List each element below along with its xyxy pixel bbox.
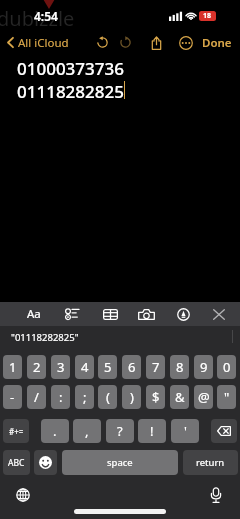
button[interactable]: 2 (27, 355, 46, 379)
button[interactable]: - (3, 385, 22, 409)
button[interactable]: : (51, 385, 70, 409)
staticText: return (196, 456, 225, 469)
button[interactable]: ABC (3, 450, 30, 475)
button[interactable]: 1 (3, 355, 22, 379)
staticText: ABC (8, 457, 25, 469)
staticText: 8 (176, 358, 184, 376)
button[interactable]: space (62, 450, 178, 475)
button[interactable]: / (27, 385, 46, 409)
button[interactable]: 9 (194, 355, 213, 379)
button[interactable]: ' (171, 419, 199, 443)
button[interactable]: Text format (18, 302, 50, 326)
staticText: 5 (104, 358, 112, 376)
staticText: 01118282825 (17, 80, 124, 103)
button[interactable]: ) (122, 385, 141, 409)
button[interactable]: $ (146, 385, 165, 409)
button[interactable]: More (174, 31, 197, 54)
button[interactable]: 5 (98, 355, 117, 379)
button[interactable]: Markup (167, 302, 199, 326)
button[interactable]: 0 (217, 355, 236, 379)
button[interactable]: 8 (170, 355, 189, 379)
staticText: 6 (128, 358, 136, 376)
staticText: 7 (152, 358, 160, 376)
button[interactable]: 3 (51, 355, 70, 379)
button[interactable]: 4 (75, 355, 94, 379)
button[interactable]: ? (106, 419, 134, 443)
button[interactable]: 6 (122, 355, 141, 379)
button[interactable]: Undo (91, 31, 114, 54)
staticText: space (107, 456, 133, 469)
staticText: : (59, 388, 63, 406)
button[interactable]: Redo (114, 31, 137, 54)
staticText: ! (150, 422, 154, 440)
button[interactable]: #+= (3, 419, 29, 443)
staticText: ; (83, 388, 87, 406)
button[interactable]: Share (145, 31, 168, 54)
staticText: 1 (9, 358, 17, 376)
staticText: . (53, 422, 57, 440)
staticText: 2 (33, 358, 41, 376)
staticText: , (85, 422, 89, 440)
staticText: ( (106, 388, 110, 406)
button[interactable]: Table (94, 302, 126, 326)
staticText: dubizzle (0, 5, 75, 32)
staticText: ? (117, 422, 123, 440)
staticText: 0 (223, 358, 231, 376)
button[interactable]: @ (194, 385, 213, 409)
button[interactable]: Change keyboard (11, 483, 35, 507)
staticText: 18 (203, 11, 212, 21)
button[interactable]: . (41, 419, 69, 443)
button[interactable]: Camera (130, 302, 162, 326)
button[interactable]: , (73, 419, 101, 443)
staticText: 9 (200, 358, 208, 376)
button[interactable]: ! (138, 419, 166, 443)
staticText: 3 (57, 358, 65, 376)
staticText: "01118282825" (11, 331, 79, 344)
staticText: All iCloud (18, 35, 69, 51)
staticText: ' (184, 422, 187, 440)
staticText: #+= (9, 426, 24, 437)
staticText: & (175, 388, 185, 406)
button[interactable]: " (217, 385, 236, 409)
staticText: 4:54 (34, 8, 58, 24)
button[interactable]: Checklist (56, 302, 88, 326)
staticText: @ (198, 388, 210, 406)
staticText: ) (130, 388, 134, 406)
button[interactable]: & (170, 385, 189, 409)
staticText: 01000373736 (17, 57, 124, 80)
button[interactable]: Backspace (211, 419, 237, 443)
button[interactable]: return (183, 450, 238, 475)
staticText: Aa (27, 306, 41, 322)
button[interactable]: Emoji (34, 450, 57, 475)
button[interactable]: 7 (146, 355, 165, 379)
button[interactable]: All iCloud (3, 31, 73, 54)
staticText: - (10, 388, 15, 406)
button[interactable]: Hide keyboard (203, 302, 235, 326)
staticText: " (224, 388, 230, 406)
staticText: 4 (81, 358, 89, 376)
staticText: Done (202, 35, 232, 51)
button[interactable]: Dictate (204, 483, 228, 507)
button[interactable]: ; (75, 385, 94, 409)
staticText: / (34, 388, 39, 406)
button[interactable]: Done (201, 31, 233, 54)
staticText: $ (152, 388, 160, 406)
button[interactable]: ( (98, 385, 117, 409)
